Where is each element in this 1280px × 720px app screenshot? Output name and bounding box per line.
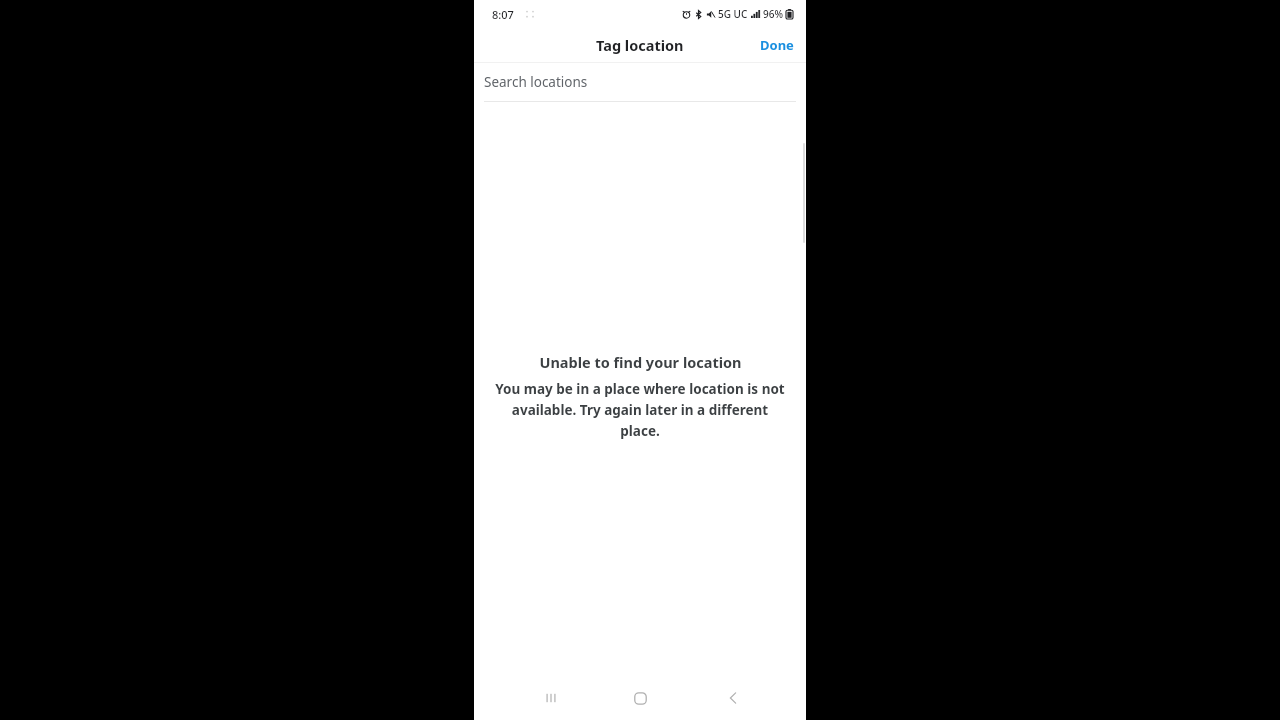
staticText: Tag location <box>596 35 684 55</box>
staticText: 5G UC <box>718 7 748 21</box>
button[interactable]: Home <box>620 678 660 718</box>
staticText: 96% <box>763 7 783 21</box>
staticText: Search locations <box>484 73 588 91</box>
button[interactable]: Search locations <box>474 63 806 101</box>
staticText: Done <box>760 36 794 54</box>
staticText: You may be in a place where location is … <box>492 380 788 440</box>
button[interactable]: Recents <box>531 678 571 718</box>
staticText: Unable to find your location <box>539 352 742 372</box>
button[interactable]: Done <box>748 30 806 60</box>
button[interactable]: Back <box>713 678 753 718</box>
staticText: 8:07 <box>492 7 514 22</box>
